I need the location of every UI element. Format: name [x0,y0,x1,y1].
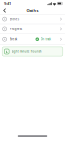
staticText: Eight minute flourish [12,50,42,53]
button[interactable]: Progress [0,24,65,34]
button[interactable]: Back [1,6,8,15]
staticText: Progress [10,27,22,31]
staticText: Oaths [26,8,38,13]
staticText: 9:41 [4,1,11,6]
button[interactable]: Entries [0,14,65,24]
staticText: On track [40,37,50,41]
staticText: Entries [10,17,19,21]
staticText: Streak [10,37,17,41]
button[interactable]: Eight minute flourish [2,47,63,56]
